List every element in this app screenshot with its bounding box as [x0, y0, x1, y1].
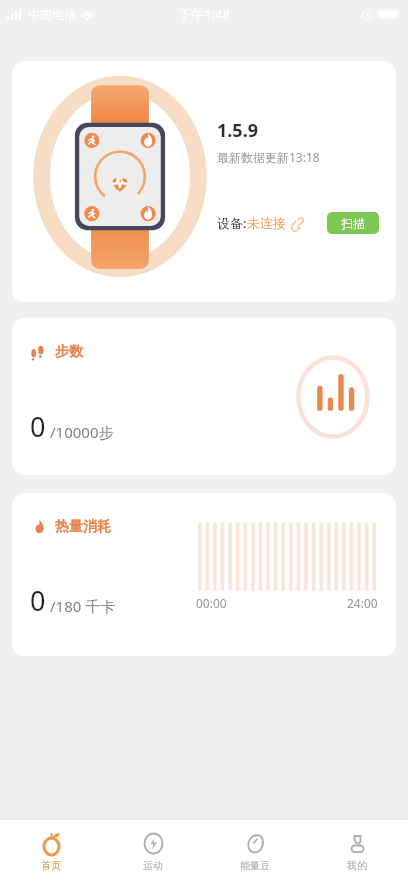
- staticText: /10000步: [50, 422, 114, 442]
- other: Link device: [289, 216, 304, 231]
- staticText: 下午1:48: [178, 5, 230, 23]
- staticText: 热量消耗: [55, 518, 111, 536]
- staticText: 扫描: [341, 216, 365, 231]
- staticText: 最新数据更新13:18: [217, 149, 320, 165]
- button[interactable]: 步数: [12, 318, 396, 475]
- button[interactable]: 能量豆: [204, 820, 306, 883]
- staticText: 中国电信: [28, 7, 76, 22]
- button[interactable]: 扫描: [327, 212, 379, 234]
- staticText: 能量豆: [240, 859, 270, 872]
- button[interactable]: 运动: [102, 820, 204, 883]
- staticText: 0: [30, 582, 46, 619]
- button[interactable]: 我的: [306, 820, 408, 883]
- staticText: 未连接: [247, 215, 286, 231]
- staticText: 1.5.9: [217, 118, 259, 143]
- staticText: 设备:: [217, 214, 247, 232]
- staticText: 0: [30, 408, 46, 445]
- button[interactable]: 1.5.9: [12, 61, 396, 302]
- staticText: 步数: [55, 343, 83, 361]
- staticText: 00:00: [196, 595, 227, 611]
- staticText: 24:00: [347, 595, 378, 611]
- button[interactable]: 首页: [0, 820, 102, 883]
- button[interactable]: 设备:: [217, 214, 304, 232]
- staticText: 我的: [347, 859, 367, 872]
- staticText: /180 千卡: [50, 596, 116, 616]
- staticText: 首页: [41, 859, 61, 872]
- staticText: 运动: [143, 859, 163, 872]
- button[interactable]: 热量消耗: [12, 493, 396, 656]
